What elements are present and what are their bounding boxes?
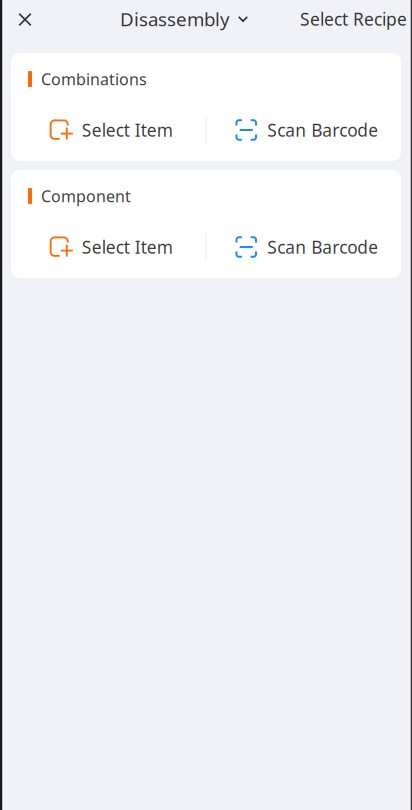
button[interactable]: Scan Barcode [206, 232, 401, 262]
staticText: Select Item [82, 118, 173, 141]
button[interactable]: Select Recipe [296, 0, 411, 40]
button[interactable]: Select Item [11, 115, 205, 145]
staticText: Scan Barcode [267, 118, 378, 141]
staticText: Component [41, 185, 131, 207]
staticText: Select Recipe [300, 7, 407, 30]
button[interactable]: Select Item [11, 232, 205, 262]
staticText: Combinations [41, 68, 147, 90]
staticText: Scan Barcode [267, 235, 378, 258]
staticText: Disassembly [120, 7, 230, 31]
button[interactable]: Disassembly [98, 0, 248, 40]
button[interactable]: Scan Barcode [206, 115, 401, 145]
staticText: Select Item [82, 235, 173, 258]
button[interactable]: Close [0, 0, 50, 38]
